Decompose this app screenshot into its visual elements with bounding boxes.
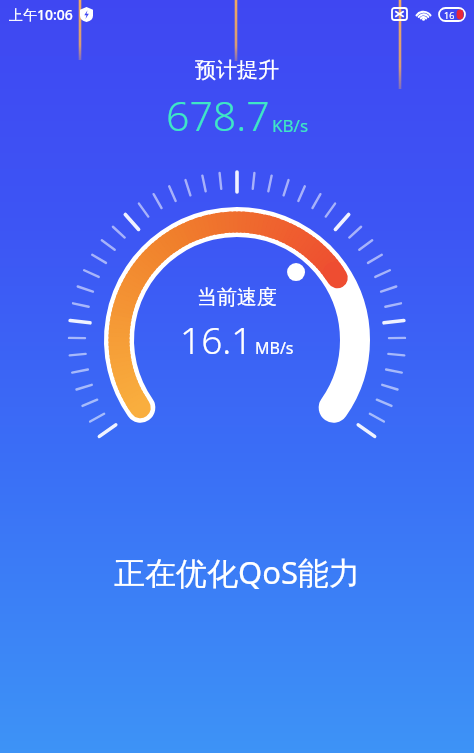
staticText: MB/s xyxy=(255,337,294,359)
staticText: 当前速度 xyxy=(197,285,277,310)
staticText: 上午10:06 xyxy=(9,5,73,24)
staticText: 预计提升 xyxy=(195,57,279,83)
staticText: 16.1 xyxy=(180,314,253,364)
other: Silent mode xyxy=(392,8,407,20)
staticText: 678.7 xyxy=(166,87,270,143)
other: Security xyxy=(80,7,93,22)
staticText: 16 xyxy=(444,9,455,21)
staticText: 正在优化QoS能力 xyxy=(0,551,474,593)
staticText: KB/s xyxy=(272,114,309,137)
